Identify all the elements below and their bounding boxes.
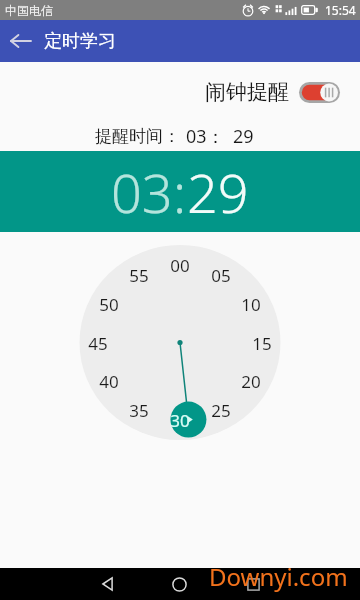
staticText: 40 [99,370,119,392]
button[interactable]: Back [84,568,131,600]
staticText: 15:54 [325,2,356,18]
button[interactable]: 25 [201,399,241,421]
button[interactable]: 00 [160,254,200,276]
button[interactable]: Back [0,20,41,62]
staticText: 45 [88,332,108,354]
staticText: : [173,155,187,229]
button[interactable]: 20 [231,370,271,392]
staticText: 30 [170,409,190,431]
staticText: 00 [170,254,190,276]
button[interactable]: 03 [111,155,173,229]
staticText: 05 [211,264,231,286]
staticText: 中国电信 [5,3,53,18]
staticText: Downyi.com [209,560,348,592]
button[interactable]: 闹钟提醒 [205,79,340,105]
staticText: 定时学习 [44,30,116,53]
button[interactable]: 15 [242,332,282,354]
staticText: 闹钟提醒 [205,79,289,105]
staticText: 50 [99,293,119,315]
staticText: 提醒时间： [95,126,180,147]
button[interactable]: 30 [160,409,200,431]
staticText: 55 [129,264,149,286]
button[interactable]: 05 [201,264,241,286]
staticText: 25 [211,399,231,421]
button[interactable]: 50 [89,293,129,315]
button[interactable]: Home [155,568,203,600]
button[interactable]: 03： [186,124,225,149]
button[interactable]: 35 [119,399,159,421]
button[interactable]: 55 [119,264,159,286]
button[interactable]: Recent apps [229,568,277,600]
staticText: 20 [241,370,261,392]
button[interactable]: 10 [231,293,271,315]
button[interactable]: 29 [233,124,254,149]
button[interactable]: 40 [89,370,129,392]
button[interactable]: 29 [187,155,249,229]
staticText: 15 [252,332,272,354]
staticText: 10 [241,293,261,315]
staticText: 35 [129,399,149,421]
button[interactable]: 45 [78,332,118,354]
